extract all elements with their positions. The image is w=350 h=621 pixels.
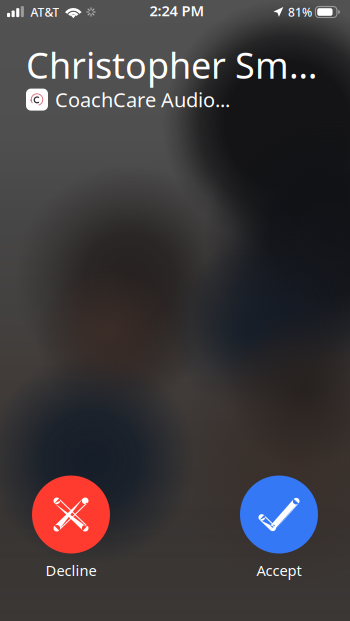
button[interactable]: Decline	[32, 475, 110, 580]
staticText: CoachCare Audio...	[55, 86, 230, 113]
staticText: 2:24 PM	[149, 1, 204, 20]
button[interactable]: Accept	[240, 475, 318, 580]
staticText: Accept	[256, 560, 301, 580]
staticText: 81%	[288, 4, 312, 20]
staticText: Christopher Smith	[26, 41, 324, 89]
staticText: Decline	[45, 560, 96, 580]
staticText: AT&T	[30, 4, 59, 20]
